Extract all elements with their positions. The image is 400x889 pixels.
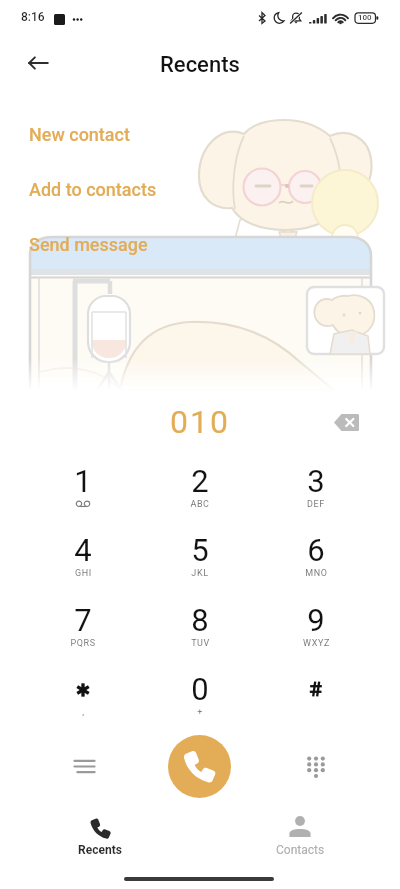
staticText: Recents [78,843,122,857]
button[interactable]: Call history options [61,743,107,789]
staticText: 1 [74,463,92,499]
button[interactable] [264,517,368,583]
staticText: Contacts [276,843,325,857]
button[interactable]: Backspace [324,400,368,444]
button[interactable] [148,448,252,514]
button[interactable]: Back [17,42,59,84]
button[interactable] [264,656,368,722]
staticText: 0 [191,671,209,707]
button[interactable] [148,587,252,653]
staticText: Send message [29,234,148,255]
button[interactable] [31,448,135,514]
staticText: 010 [170,403,230,441]
button[interactable]: Recents [0,812,200,860]
staticText: 100 [358,13,372,22]
button[interactable]: Contacts [200,812,400,860]
staticText: 8 [191,602,209,638]
button[interactable]: Add to contacts [29,179,157,203]
button[interactable] [148,656,252,722]
staticText: 8:16 [21,10,45,24]
button[interactable] [31,587,135,653]
staticText: 3 [307,463,325,499]
button[interactable] [148,517,252,583]
staticText: MNO [305,568,328,579]
staticText: Add to contacts [29,179,157,200]
staticText: PQRS [70,638,96,649]
staticText: WXYZ [303,638,330,649]
staticText: GHI [75,568,92,579]
button[interactable]: Send message [29,234,148,258]
staticText: 9 [307,602,325,638]
staticText: JKL [191,568,209,579]
staticText: 6 [307,532,325,568]
button[interactable]: Dialpad [293,743,339,789]
staticText: New contact [29,124,130,145]
staticText: 5 [191,532,209,568]
staticText: + [197,707,203,718]
button[interactable] [264,448,368,514]
staticText: TUV [191,638,210,649]
button[interactable] [264,587,368,653]
staticText: ABC [190,499,210,510]
button[interactable] [31,656,135,722]
staticText: 7 [74,602,92,638]
staticText: , [82,707,85,718]
staticText: 2 [191,463,209,499]
staticText: Recents [160,52,240,78]
button[interactable] [31,517,135,583]
staticText: 4 [74,532,92,568]
staticText: DEF [307,499,325,510]
button[interactable]: Call [168,735,231,798]
button[interactable]: New contact [29,124,130,148]
